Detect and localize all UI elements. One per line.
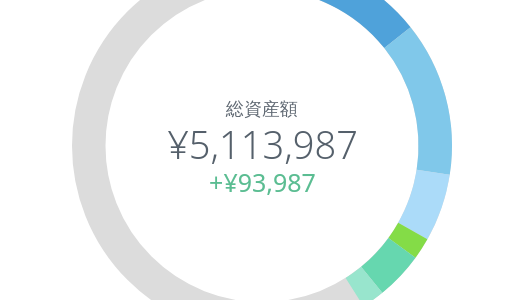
staticText: 総資産額 — [226, 98, 298, 121]
staticText: +¥93,987 — [209, 165, 316, 199]
button[interactable]: 資産構成グラフ: 総資産額 5,113,987円 — [0, 0, 520, 300]
staticText: ¥5,113,987 — [167, 118, 358, 170]
